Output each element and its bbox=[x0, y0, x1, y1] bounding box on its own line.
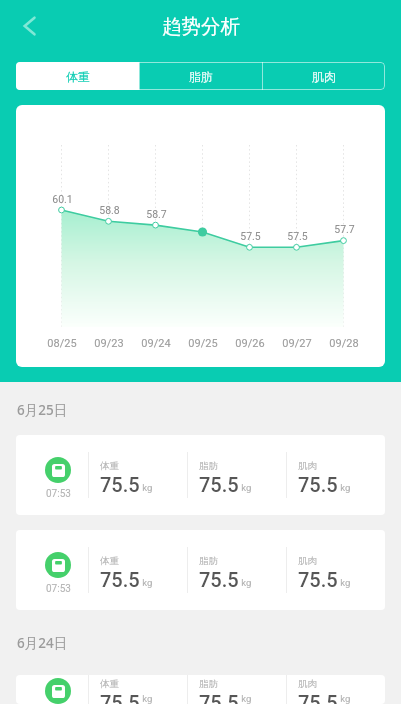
button[interactable]: 07:53 bbox=[16, 435, 385, 515]
staticText: 75.5 bbox=[298, 473, 338, 496]
button[interactable]: 脂肪 bbox=[140, 62, 262, 90]
button[interactable]: Back bbox=[9, 4, 53, 48]
staticText: 75.5 bbox=[100, 568, 140, 591]
staticText: 57.5 bbox=[240, 230, 261, 242]
staticText: 09/26 bbox=[235, 337, 265, 350]
staticText: 体重 bbox=[100, 460, 119, 472]
staticText: kg bbox=[338, 482, 351, 493]
staticText: 09/25 bbox=[188, 337, 218, 350]
staticText: 75.5 bbox=[199, 568, 239, 591]
staticText: 脂肪 bbox=[189, 69, 213, 84]
staticText: 08/25 bbox=[47, 337, 77, 350]
staticText: 09/27 bbox=[282, 337, 312, 350]
staticText: 肌肉 bbox=[312, 69, 336, 84]
staticText: 07:53 bbox=[46, 583, 71, 595]
staticText: 60.1 bbox=[52, 193, 73, 205]
staticText: 75.5 bbox=[100, 473, 140, 496]
staticText: 75.5 bbox=[100, 691, 140, 704]
staticText: kg bbox=[239, 693, 252, 704]
staticText: 趋势分析 bbox=[162, 14, 240, 39]
staticText: 肌肉 bbox=[298, 460, 317, 472]
staticText: kg bbox=[140, 693, 153, 704]
staticText: 肌肉 bbox=[298, 555, 317, 567]
staticText: kg bbox=[140, 482, 153, 493]
staticText: 75.5 bbox=[298, 691, 338, 704]
staticText: 脂肪 bbox=[199, 460, 218, 472]
staticText: 09/28 bbox=[329, 337, 359, 350]
staticText: 75.5 bbox=[298, 568, 338, 591]
staticText: 脂肪 bbox=[199, 555, 218, 567]
button[interactable]: 07:53 bbox=[16, 675, 385, 704]
staticText: 57.7 bbox=[334, 223, 355, 235]
staticText: kg bbox=[338, 693, 351, 704]
staticText: 肌肉 bbox=[298, 678, 317, 690]
staticText: kg bbox=[239, 577, 252, 588]
staticText: 58.7 bbox=[146, 208, 167, 220]
staticText: 6月24日 bbox=[17, 634, 68, 652]
staticText: 6月25日 bbox=[17, 401, 68, 419]
button[interactable]: 肌肉 bbox=[263, 62, 385, 90]
staticText: 09/23 bbox=[94, 337, 124, 350]
staticText: kg bbox=[140, 577, 153, 588]
staticText: 57.5 bbox=[287, 230, 308, 242]
button[interactable]: 体重 bbox=[16, 62, 139, 90]
staticText: 09/24 bbox=[141, 337, 171, 350]
staticText: kg bbox=[338, 577, 351, 588]
button[interactable]: 07:53 bbox=[16, 530, 385, 610]
staticText: 58.8 bbox=[99, 204, 120, 216]
staticText: 75.5 bbox=[199, 473, 239, 496]
staticText: 体重 bbox=[66, 69, 90, 84]
staticText: kg bbox=[239, 482, 252, 493]
staticText: 07:53 bbox=[46, 488, 71, 500]
staticText: 脂肪 bbox=[199, 678, 218, 690]
staticText: 体重 bbox=[100, 678, 119, 690]
staticText: 75.5 bbox=[199, 691, 239, 704]
staticText: 体重 bbox=[100, 555, 119, 567]
